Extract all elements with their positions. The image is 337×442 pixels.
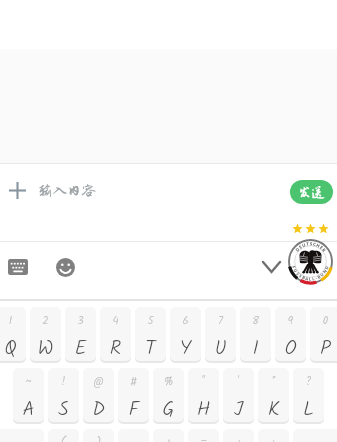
button[interactable]: +: [153, 429, 184, 442]
button[interactable]: ): [83, 429, 114, 442]
staticText: #: [118, 373, 149, 391]
staticText: Q: [0, 333, 26, 361]
button[interactable]: Add attachment: [2, 175, 33, 206]
staticText: R: [100, 333, 131, 361]
staticText: H: [188, 394, 219, 422]
staticText: =: [188, 434, 219, 442]
staticText: W: [30, 333, 61, 361]
staticText: ): [83, 434, 114, 442]
staticText: ;: [258, 434, 289, 442]
staticText: A: [13, 394, 44, 422]
button[interactable]: 发送: [290, 180, 333, 204]
button[interactable]: Keyboard: [0, 249, 36, 285]
staticText: 3: [65, 312, 96, 330]
staticText: F: [118, 394, 149, 422]
staticText: ": [188, 373, 219, 391]
staticText: ~: [13, 373, 44, 391]
button[interactable]: 4: [100, 307, 131, 363]
staticText: 1: [0, 312, 26, 330]
button[interactable]: Emoji: [47, 249, 83, 285]
staticText: %: [153, 373, 184, 391]
button[interactable]: 2: [30, 307, 61, 363]
staticText: +: [153, 434, 184, 442]
staticText: 5: [135, 312, 166, 330]
staticText: 2: [30, 312, 61, 330]
staticText: J: [223, 394, 254, 422]
staticText: G: [153, 394, 184, 422]
button[interactable]: (: [48, 429, 79, 442]
staticText: O: [275, 333, 306, 361]
button[interactable]: @: [83, 368, 114, 424]
button[interactable]: 1: [0, 307, 26, 363]
button[interactable]: 6: [170, 307, 201, 363]
staticText: 9: [275, 312, 306, 330]
button[interactable]: #: [118, 368, 149, 424]
staticText: S: [48, 394, 79, 422]
button[interactable]: 9: [275, 307, 306, 363]
button[interactable]: *: [258, 368, 289, 424]
staticText: K: [258, 394, 289, 422]
button[interactable]: %: [153, 368, 184, 424]
button[interactable]: ~: [13, 368, 44, 424]
staticText: 6: [170, 312, 201, 330]
staticText: 0: [310, 312, 337, 330]
staticText: L: [293, 394, 324, 422]
button[interactable]: 5: [135, 307, 166, 363]
button[interactable]: !: [48, 368, 79, 424]
button[interactable]: 7: [205, 307, 236, 363]
button[interactable]: Collapse panel: [255, 251, 287, 283]
staticText: 发送: [298, 185, 326, 200]
button[interactable]: ?: [293, 368, 324, 424]
staticText: 输入内容: [38, 183, 96, 199]
staticText: U: [205, 333, 236, 361]
button[interactable]: 8: [240, 307, 271, 363]
staticText: :: [223, 434, 254, 442]
staticText: E: [65, 333, 96, 361]
staticText: D: [83, 394, 114, 422]
staticText: 7: [205, 312, 236, 330]
staticText: (: [48, 434, 79, 442]
button[interactable]: Team badge: [287, 221, 334, 285]
button[interactable]: ': [223, 368, 254, 424]
staticText: !: [48, 373, 79, 391]
staticText: Y: [170, 333, 201, 361]
staticText: *: [258, 373, 289, 391]
staticText: 8: [240, 312, 271, 330]
button[interactable]: 0: [310, 307, 337, 363]
button[interactable]: ": [188, 368, 219, 424]
staticText: ?: [293, 373, 324, 391]
staticText: @: [83, 373, 114, 391]
button[interactable]: 输入内容: [33, 170, 283, 212]
button[interactable]: 3: [65, 307, 96, 363]
button[interactable]: =: [188, 429, 219, 442]
staticText: I: [240, 333, 271, 361]
staticText: T: [135, 333, 166, 361]
staticText: 4: [100, 312, 131, 330]
staticText: P: [310, 333, 337, 361]
